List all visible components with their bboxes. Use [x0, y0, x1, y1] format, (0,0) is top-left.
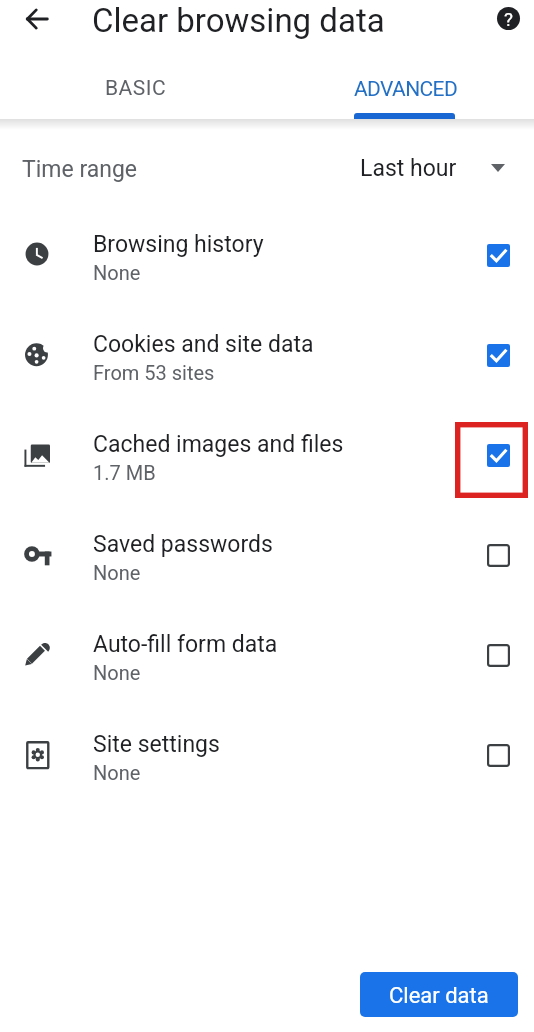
staticText: Cached images and files — [93, 431, 344, 458]
button[interactable]: Back — [13, 0, 61, 43]
staticText: Saved passwords — [93, 531, 273, 558]
button[interactable]: Site settings — [474, 731, 522, 779]
staticText: 1.7 MB — [93, 461, 156, 484]
staticText: None — [93, 561, 141, 584]
staticText: ? — [504, 8, 513, 30]
button[interactable]: Site settings — [0, 713, 534, 813]
staticText: None — [93, 261, 141, 284]
button[interactable]: ADVANCED — [267, 62, 534, 118]
button[interactable]: Cached images and files — [474, 431, 522, 479]
button[interactable]: Cookies and site data — [474, 331, 522, 379]
staticText: Site settings — [93, 731, 220, 758]
staticText: Cookies and site data — [93, 331, 314, 358]
button[interactable]: Saved passwords — [474, 531, 522, 579]
button[interactable]: Cookies and site data — [0, 313, 534, 413]
staticText: ADVANCED — [354, 77, 458, 102]
staticText: Browsing history — [93, 231, 264, 258]
staticText: Auto-fill form data — [93, 631, 278, 658]
staticText: Clear data — [389, 983, 489, 1009]
staticText: Clear browsing data — [92, 1, 385, 40]
button[interactable]: Auto-fill form data — [474, 631, 522, 679]
button[interactable]: BASIC — [0, 62, 267, 118]
staticText: Time range — [22, 156, 138, 183]
staticText: None — [93, 661, 141, 684]
staticText: None — [93, 761, 141, 784]
button[interactable]: Browsing history — [474, 231, 522, 279]
button[interactable]: Clear data — [360, 972, 518, 1017]
button[interactable]: Auto-fill form data — [0, 613, 534, 713]
staticText: Last hour — [360, 155, 457, 182]
button[interactable]: Cached images and files — [0, 413, 534, 513]
button[interactable]: Time range: Last hour — [350, 144, 505, 192]
staticText: BASIC — [105, 76, 167, 101]
button[interactable]: Browsing history — [0, 213, 534, 313]
staticText: From 53 sites — [93, 361, 215, 384]
button[interactable]: Help — [484, 0, 532, 42]
button[interactable]: Saved passwords — [0, 513, 534, 613]
